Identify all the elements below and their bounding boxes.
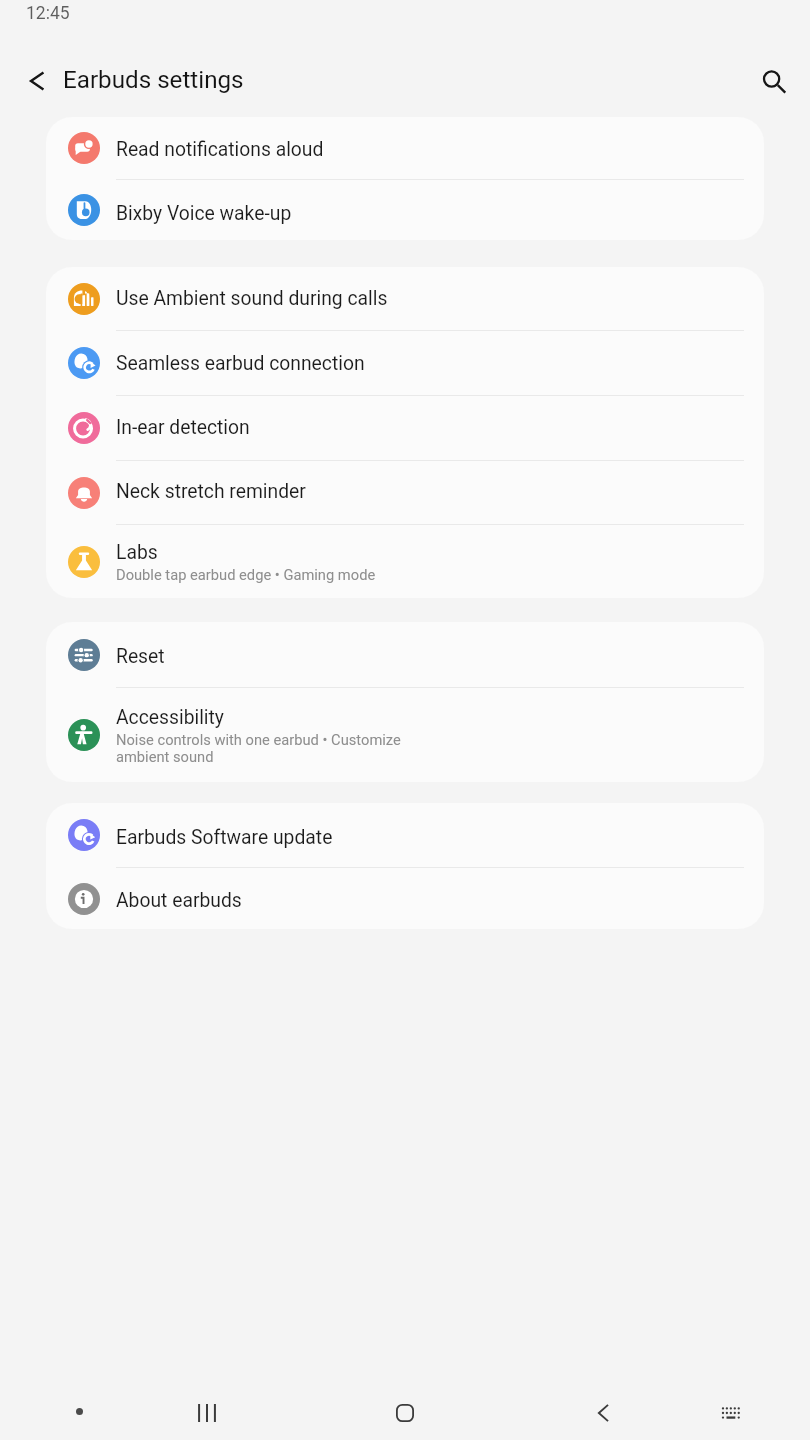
staticText: Labs bbox=[116, 541, 158, 564]
button[interactable]: Labs bbox=[46, 525, 764, 598]
button[interactable]: In-ear detection bbox=[46, 396, 764, 460]
staticText: Neck stretch reminder bbox=[116, 480, 306, 503]
button[interactable]: Reset bbox=[46, 622, 764, 687]
button[interactable]: Recent apps bbox=[179, 1385, 235, 1440]
staticText: Noise controls with one earbud • Customi… bbox=[116, 731, 401, 766]
staticText: Earbuds settings bbox=[63, 66, 244, 94]
button[interactable]: Neck stretch reminder bbox=[46, 461, 764, 524]
button[interactable]: Seamless earbud connection bbox=[46, 331, 764, 395]
button[interactable]: Back bbox=[575, 1385, 631, 1440]
button[interactable]: Accessibility bbox=[46, 688, 764, 782]
staticText: Seamless earbud connection bbox=[116, 352, 365, 375]
staticText: Bixby Voice wake-up bbox=[116, 202, 292, 225]
staticText: About earbuds bbox=[116, 889, 242, 912]
button[interactable]: Use Ambient sound during calls bbox=[46, 267, 764, 330]
button[interactable]: Home bbox=[377, 1385, 433, 1440]
button[interactable]: Navigate up bbox=[14, 57, 61, 104]
staticText: Use Ambient sound during calls bbox=[116, 287, 388, 310]
staticText: Read notifications aloud bbox=[116, 138, 324, 161]
staticText: Double tap earbud edge • Gaming mode bbox=[116, 566, 376, 583]
button[interactable]: Keyboard bbox=[703, 1385, 759, 1440]
staticText: Accessibility bbox=[116, 706, 224, 729]
staticText: 12:45 bbox=[26, 3, 70, 24]
staticText: In-ear detection bbox=[116, 416, 250, 439]
button[interactable]: Bixby Voice wake-up bbox=[46, 180, 764, 240]
button[interactable]: Earbuds Software update bbox=[46, 803, 764, 867]
staticText: Earbuds Software update bbox=[116, 826, 333, 849]
button[interactable]: About earbuds bbox=[46, 868, 764, 929]
button[interactable]: Search bbox=[751, 59, 797, 105]
button[interactable]: Read notifications aloud bbox=[46, 117, 764, 179]
staticText: Reset bbox=[116, 645, 165, 668]
